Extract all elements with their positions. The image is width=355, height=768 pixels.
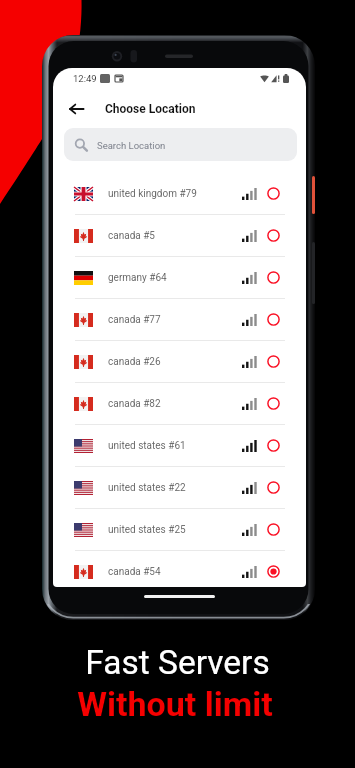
button[interactable]: Search Location — [64, 128, 297, 161]
staticText: Choose Location — [105, 102, 196, 116]
button[interactable]: canada #54 — [53, 551, 306, 587]
staticText: canada #82 — [108, 398, 161, 410]
button[interactable]: canada #82 — [53, 383, 306, 424]
staticText: Fast Servers — [85, 643, 270, 682]
button[interactable]: united states #61 — [53, 425, 306, 466]
button[interactable]: united states #25 — [53, 509, 306, 550]
staticText: united states #22 — [108, 482, 186, 494]
staticText: canada #26 — [108, 356, 161, 368]
button[interactable]: Back — [63, 96, 89, 122]
button[interactable]: Power — [312, 176, 315, 214]
button[interactable]: canada #5 — [53, 215, 306, 256]
button[interactable]: united kingdom #79 — [53, 173, 306, 214]
staticText: Without limit — [77, 684, 273, 724]
staticText: canada #77 — [108, 314, 161, 326]
staticText: germany #64 — [108, 272, 167, 284]
staticText: united kingdom #79 — [108, 188, 197, 200]
button[interactable]: germany #64 — [53, 257, 306, 298]
staticText: canada #54 — [108, 566, 161, 578]
staticText: 12:49 — [73, 73, 97, 84]
staticText: canada #5 — [108, 230, 155, 242]
button[interactable]: canada #26 — [53, 341, 306, 382]
button[interactable]: united states #22 — [53, 467, 306, 508]
staticText: united states #25 — [108, 524, 186, 536]
button[interactable]: canada #77 — [53, 299, 306, 340]
staticText: united states #61 — [108, 440, 186, 452]
staticText: Search Location — [97, 140, 166, 151]
